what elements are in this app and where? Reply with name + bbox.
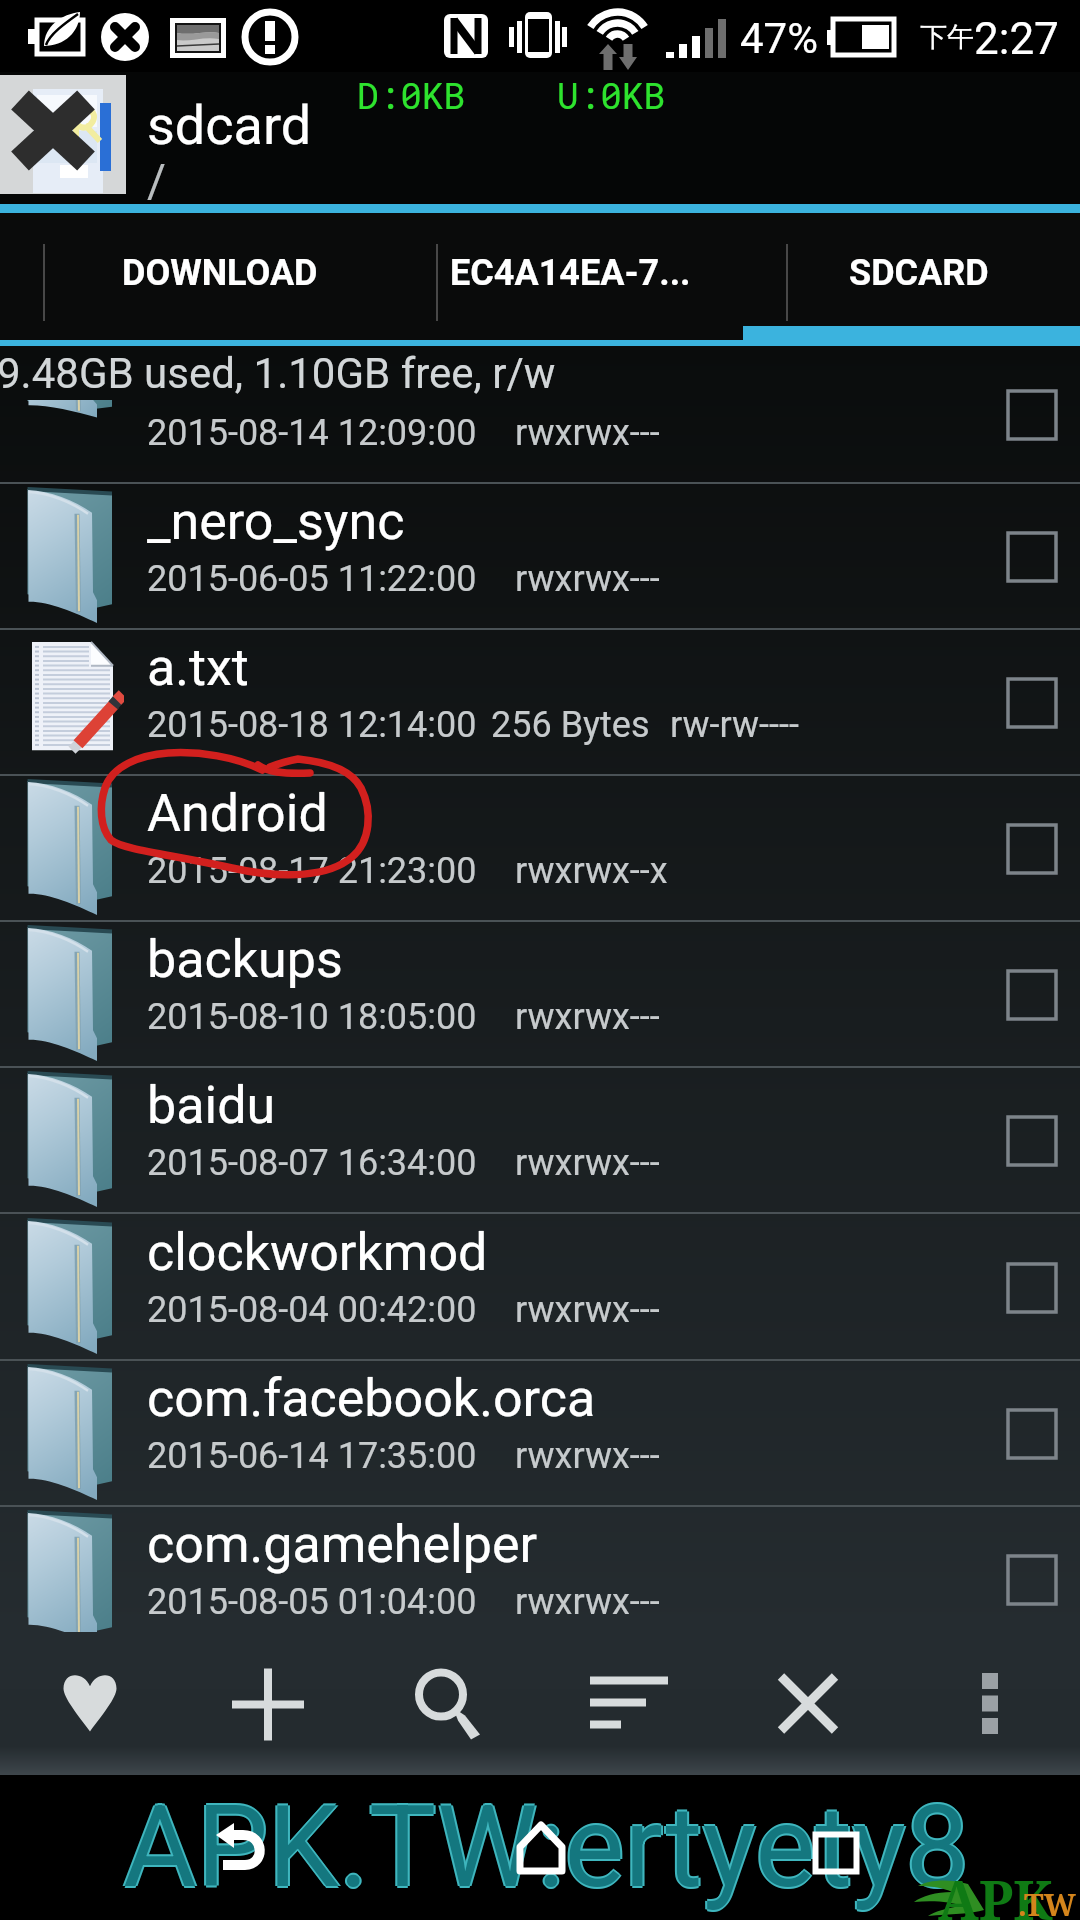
staticText: 2015-08-05 01:04:00 — [147, 1581, 477, 1623]
staticText: 2:27 — [974, 13, 1059, 65]
button[interactable]: Recents — [776, 1793, 896, 1913]
button[interactable]: Android — [0, 776, 1080, 922]
staticText: 2015-08-14 12:09:00 — [147, 412, 477, 454]
staticText: 47% — [740, 14, 818, 63]
button[interactable]: More options — [919, 1632, 1061, 1775]
staticText: 下午 — [920, 20, 974, 54]
staticText: APK — [938, 1862, 1053, 1920]
staticText: EC4A14EA-7... — [450, 252, 691, 294]
button[interactable]: Home — [481, 1788, 601, 1908]
staticText: U:0KB — [557, 71, 666, 118]
staticText: DOWNLOAD — [122, 252, 318, 294]
staticText: APK.TW:ertyety8 — [125, 1781, 972, 1913]
staticText: rwxrwx--- — [515, 1142, 660, 1184]
button[interactable]: Select — [1006, 1408, 1058, 1460]
staticText: rw-rw---- — [670, 704, 799, 746]
staticText: APK.TW:ertyety8 — [123, 1783, 970, 1915]
button[interactable]: Back — [181, 1787, 301, 1907]
button[interactable]: DOWNLOAD — [0, 213, 393, 346]
staticText: clockworkmod — [147, 1222, 987, 1283]
staticText: 2015-08-04 00:42:00 — [147, 1289, 477, 1331]
staticText: Android — [147, 783, 987, 844]
button[interactable]: Select — [1006, 1115, 1058, 1167]
button[interactable]: Select — [1006, 1554, 1058, 1606]
staticText: baidu — [147, 1075, 987, 1136]
staticText: 2015-08-18 12:14:00 — [147, 704, 477, 746]
button[interactable]: Bookmarks — [17, 1632, 159, 1775]
button[interactable]: Search — [376, 1632, 518, 1775]
button[interactable]: baidu — [0, 1068, 1080, 1214]
staticText: APK.TW:ertyety8 — [121, 1781, 968, 1913]
button[interactable]: Select — [1006, 823, 1058, 875]
button[interactable]: Close — [737, 1632, 879, 1775]
button[interactable]: Select — [1006, 531, 1058, 583]
button[interactable]: clockworkmod — [0, 1215, 1080, 1361]
staticText: 2015-08-07 16:34:00 — [147, 1142, 477, 1184]
button[interactable]: com.gamehelper — [0, 1507, 1080, 1632]
staticText: SDCARD — [849, 252, 989, 294]
staticText: rwxrwx--- — [515, 558, 660, 600]
staticText: D:0KB — [357, 71, 466, 118]
staticText: sdcard — [147, 94, 312, 157]
staticText: backups — [147, 929, 987, 990]
button[interactable]: Sort — [556, 1632, 698, 1775]
staticText: rwxrwx--- — [515, 412, 660, 454]
button[interactable]: SDCARD — [743, 213, 1080, 346]
staticText: 2015-06-05 11:22:00 — [147, 558, 477, 600]
button[interactable]: Select — [1006, 389, 1058, 441]
staticText: APK.TW:ertyety8 — [123, 1781, 970, 1913]
staticText: rwxrwx--- — [515, 1581, 660, 1623]
staticText: rwxrwx--- — [515, 996, 660, 1038]
staticText: 9.48GB used, 1.10GB free, r/w — [0, 349, 556, 398]
staticText: com.gamehelper — [147, 1514, 987, 1575]
staticText: rwxrwx--- — [515, 1289, 660, 1331]
button[interactable]: a.txt — [0, 630, 1080, 776]
staticText: APK.TW:ertyety8 — [123, 1779, 970, 1911]
staticText: a.txt — [147, 637, 987, 698]
staticText: .TW — [1018, 1884, 1076, 1920]
button[interactable]: Select — [1006, 969, 1058, 1021]
staticText: 256 Bytes — [491, 704, 650, 746]
button[interactable]: backups — [0, 922, 1080, 1068]
button[interactable]: EC4A14EA-7... — [393, 213, 743, 346]
staticText: rwxrwx--- — [515, 1435, 660, 1477]
button[interactable]: Select — [1006, 677, 1058, 729]
button[interactable]: New — [197, 1632, 339, 1775]
staticText: _nero_sync — [147, 491, 987, 552]
staticText: / — [147, 154, 166, 208]
staticText: 2015-08-10 18:05:00 — [147, 996, 477, 1038]
button[interactable]: 2015-08-14 12:09:00 — [0, 346, 1080, 484]
staticText: com.facebook.orca — [147, 1368, 987, 1429]
button[interactable]: Select — [1006, 1262, 1058, 1314]
staticText: 2015-06-14 17:35:00 — [147, 1435, 477, 1477]
staticText: rwxrwx--x — [515, 850, 668, 892]
button[interactable]: _nero_sync — [0, 484, 1080, 630]
staticText: 2015-08-17 21:23:00 — [147, 850, 477, 892]
button[interactable]: com.facebook.orca — [0, 1361, 1080, 1507]
